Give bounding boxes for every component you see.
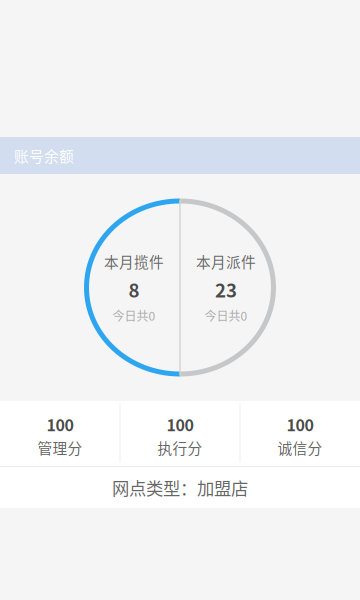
staticText: 本月揽件 <box>104 251 164 272</box>
staticText: 100 <box>46 413 73 436</box>
staticText: 账号余额 <box>14 145 74 166</box>
staticText: 100 <box>166 413 193 436</box>
staticText: 100 <box>286 413 313 436</box>
staticText: 本月派件 <box>196 251 256 272</box>
staticText: 8 <box>128 276 139 303</box>
staticText: 23 <box>215 276 237 303</box>
button[interactable]: 100 <box>240 401 359 466</box>
button[interactable]: 账号余额 <box>0 137 360 174</box>
staticText: 今日共0 <box>204 307 247 324</box>
staticText: 管理分 <box>37 437 82 458</box>
staticText: 诚信分 <box>277 437 322 458</box>
button[interactable]: 100 <box>0 401 119 466</box>
staticText: 今日共0 <box>112 307 155 324</box>
staticText: 网点类型：加盟店 <box>112 475 248 500</box>
staticText: 执行分 <box>157 437 202 458</box>
button[interactable]: 网点类型：加盟店 <box>0 467 360 508</box>
button[interactable]: 100 <box>120 401 239 466</box>
